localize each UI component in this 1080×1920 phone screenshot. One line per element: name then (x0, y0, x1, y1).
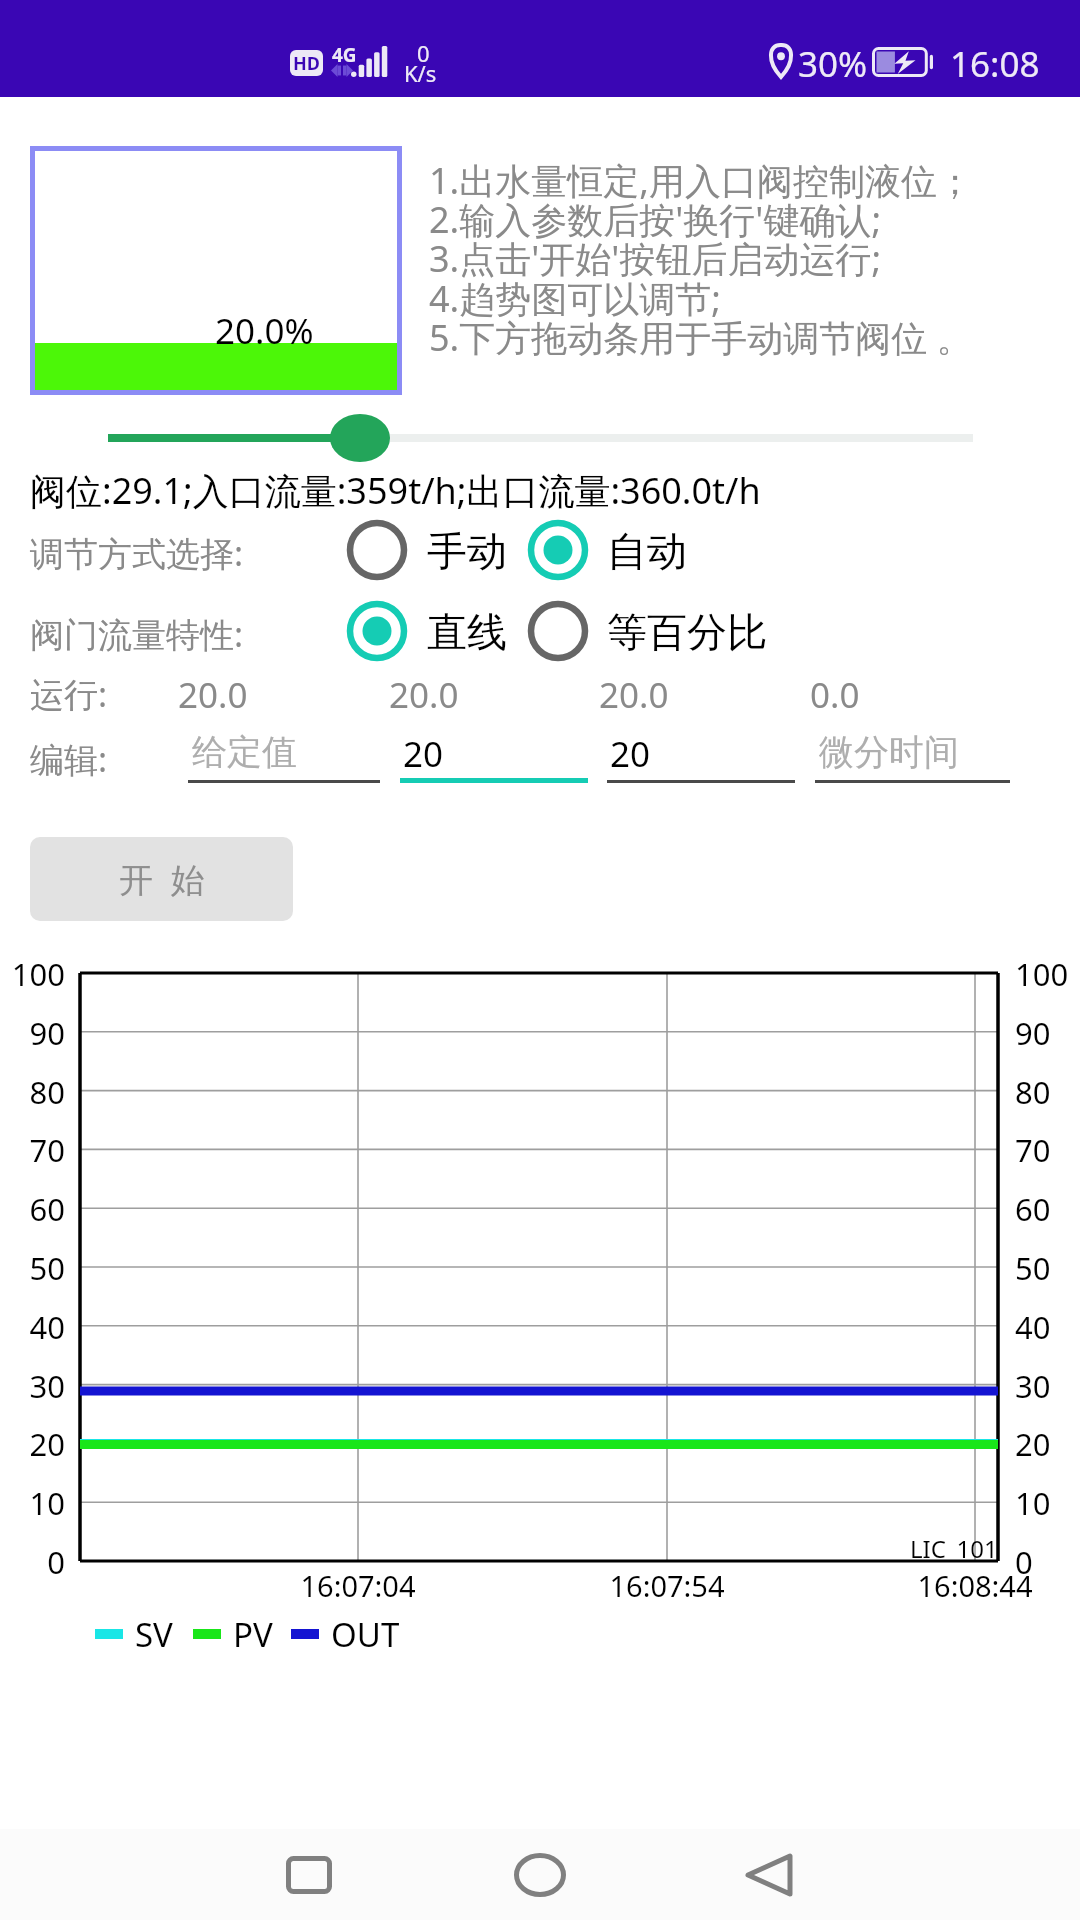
staticText: 5.下方拖动条用于手动调节阀位 。 (429, 313, 973, 362)
staticText: 60 (0, 1188, 65, 1230)
button[interactable]: 给定值 (188, 728, 380, 783)
button[interactable]: Recents (232, 1829, 386, 1920)
staticText: 4.趋势图可以调节; (429, 274, 721, 323)
staticText: 100 (0, 953, 65, 995)
staticText: 微分时间 (819, 730, 959, 774)
staticText: 给定值 (192, 730, 297, 774)
staticText: 20.0 (178, 671, 248, 719)
staticText: 90 (1015, 1012, 1080, 1054)
button[interactable]: 20 (607, 728, 795, 783)
staticText: 阀位:29.1;入口流量:359t/h;出口流量:360.0t/h (30, 466, 761, 515)
button[interactable]: 等百分比 (527, 599, 771, 663)
staticText: 70 (1015, 1129, 1080, 1171)
staticText: 40 (1015, 1306, 1080, 1348)
staticText: 16:07:54 (547, 1566, 787, 1605)
staticText: 10 (0, 1482, 65, 1524)
staticText: 直线 (427, 607, 507, 657)
staticText: 30 (0, 1365, 65, 1407)
staticText: 40 (0, 1306, 65, 1348)
staticText: 10 (1015, 1482, 1080, 1524)
button[interactable]: 20 (400, 728, 588, 783)
staticText: 20.0% (215, 307, 314, 355)
staticText: 0 (1015, 1541, 1080, 1583)
button[interactable]: 阀位调节滑块 (0, 408, 1080, 468)
staticText: 3.点击'开始'按钮后启动运行; (429, 234, 882, 283)
staticText: 0 (417, 38, 430, 68)
staticText: 70 (0, 1129, 65, 1171)
staticText: 100 (1015, 953, 1080, 995)
staticText: 80 (0, 1071, 65, 1113)
staticText: 4G (332, 42, 357, 68)
button[interactable]: 开 始 (30, 837, 293, 921)
staticText: 1.出水量恒定,用入口阀控制液位； (429, 156, 973, 205)
button[interactable]: Back (692, 1829, 846, 1920)
staticText: 20 (610, 730, 651, 778)
staticText: 调节方式选择: (30, 530, 244, 576)
staticText: 20 (0, 1423, 65, 1465)
staticText: 16:08 (950, 40, 1040, 88)
staticText: 等百分比 (607, 607, 767, 657)
staticText: 手动 (427, 526, 507, 576)
staticText: K/s (404, 58, 437, 88)
staticText: PV (233, 1612, 273, 1656)
staticText: 80 (1015, 1071, 1080, 1113)
staticText: 60 (1015, 1188, 1080, 1230)
staticText: 16:07:04 (238, 1566, 478, 1605)
staticText: 20 (1015, 1423, 1080, 1465)
button[interactable]: 手动 (346, 518, 509, 582)
staticText: 20 (403, 730, 444, 778)
staticText: 50 (0, 1247, 65, 1289)
button[interactable]: 自动 (527, 518, 689, 582)
staticText: OUT (331, 1612, 400, 1656)
staticText: 0 (0, 1541, 65, 1583)
staticText: 90 (0, 1012, 65, 1054)
staticText: 50 (1015, 1247, 1080, 1289)
staticText: 自动 (607, 526, 687, 576)
staticText: LIC_101 (910, 1532, 998, 1565)
staticText: 编辑: (30, 736, 108, 782)
staticText: 阀门流量特性: (30, 611, 244, 657)
staticText: 0.0 (810, 671, 860, 719)
staticText: 运行: (30, 671, 108, 717)
staticText: HD (293, 51, 320, 76)
staticText: SV (135, 1612, 173, 1656)
staticText: 开 始 (119, 856, 205, 902)
button[interactable]: 直线 (346, 599, 509, 663)
staticText: 30 (1015, 1365, 1080, 1407)
staticText: 20.0 (389, 671, 459, 719)
button[interactable]: Home (463, 1829, 617, 1920)
staticText: 20.0 (599, 671, 669, 719)
staticText: 16:08:44 (855, 1566, 1080, 1605)
staticText: 2.输入参数后按'换行'键确认; (429, 195, 882, 244)
button[interactable]: 微分时间 (815, 728, 1010, 783)
staticText: 30% (798, 40, 868, 88)
